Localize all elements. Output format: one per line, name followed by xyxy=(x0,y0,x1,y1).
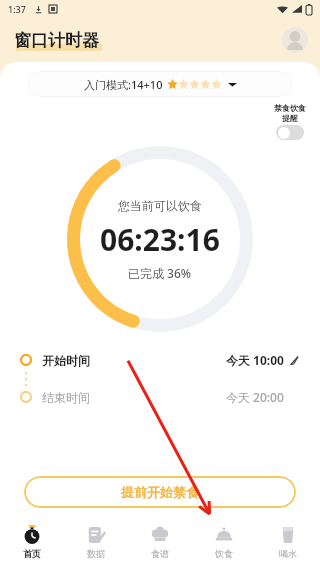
button[interactable]: 开始时间 xyxy=(20,348,300,372)
button[interactable]: 首页 xyxy=(0,516,64,568)
staticText: 1:37 xyxy=(8,3,26,15)
button[interactable]: 食谱 xyxy=(128,516,192,568)
staticText: 开始时间 xyxy=(42,353,90,368)
staticText: 喝水 xyxy=(279,548,297,559)
button[interactable]: 禁食饮食 xyxy=(274,103,306,140)
other: Edit start time xyxy=(289,355,300,366)
staticText: 禁食饮食 xyxy=(274,103,306,113)
staticText: 入门模式:14+10 xyxy=(84,77,163,92)
button[interactable]: 饮食 xyxy=(192,516,256,568)
button[interactable]: 结束时间 xyxy=(20,386,300,408)
staticText: 已完成 36% xyxy=(128,265,192,281)
staticText: 首页 xyxy=(23,548,41,559)
button[interactable]: 入门模式:14+10 xyxy=(28,71,292,97)
button[interactable]: 数据 xyxy=(64,516,128,568)
staticText: 食谱 xyxy=(151,548,169,559)
button[interactable]: 喝水 xyxy=(256,516,320,568)
staticText: 06:23:16 xyxy=(100,219,220,260)
staticText: 提醒 xyxy=(282,113,298,123)
staticText: 您当前可以饮食 xyxy=(118,198,202,213)
button[interactable]: Profile xyxy=(282,27,308,53)
staticText: 窗口计时器 xyxy=(14,30,99,51)
staticText: 数据 xyxy=(87,548,105,559)
staticText: 今天 20:00 xyxy=(226,389,284,405)
button[interactable]: 提前开始禁食 xyxy=(24,476,296,508)
staticText: 今天 10:00 xyxy=(226,352,284,368)
staticText: 提前开始禁食 xyxy=(121,484,199,500)
staticText: 结束时间 xyxy=(42,390,90,405)
staticText: 饮食 xyxy=(215,548,233,559)
